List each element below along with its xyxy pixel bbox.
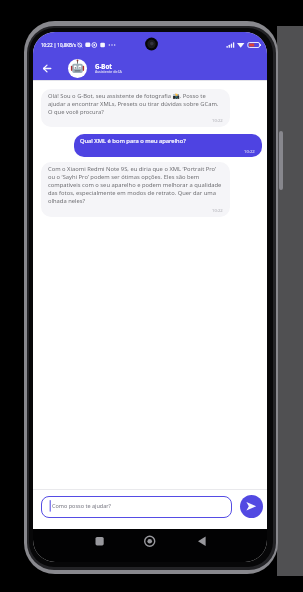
staticText: Com o Xiaomi Redmi Note 9S, eu diria que…	[48, 165, 222, 205]
button[interactable]	[39, 60, 55, 76]
button[interactable]	[140, 532, 159, 551]
button[interactable]	[68, 59, 87, 78]
staticText: Qual XML é bom para o meu aparelho?	[80, 137, 186, 145]
staticText: Como posso te ajudar?	[52, 502, 111, 509]
button[interactable]	[189, 532, 208, 551]
button[interactable]: Como posso te ajudar?	[41, 496, 232, 518]
staticText: Olá! Sou o G-Bot, seu assistente de foto…	[48, 92, 219, 116]
button[interactable]	[240, 495, 263, 518]
button[interactable]	[90, 532, 109, 551]
staticText: 10:22	[212, 208, 223, 214]
staticText: Assistente de IA	[95, 69, 122, 74]
staticText: 10:22	[212, 118, 223, 124]
staticText: 10:22 | 10,8KB/s	[41, 42, 76, 48]
staticText: 10:22	[244, 149, 255, 155]
staticText: G-Bot	[95, 62, 112, 70]
